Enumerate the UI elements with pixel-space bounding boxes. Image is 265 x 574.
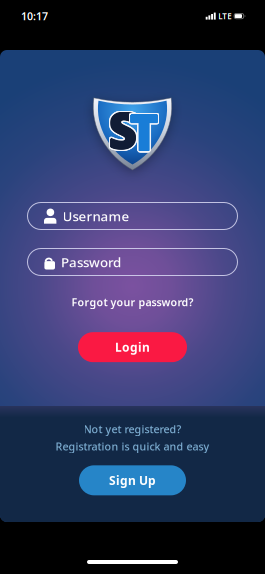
- staticText: S: [108, 96, 136, 161]
- staticText: T: [130, 97, 159, 162]
- button[interactable]: Sign Up: [79, 465, 186, 495]
- staticText: T: [130, 101, 159, 166]
- staticText: S: [107, 98, 135, 164]
- staticText: Username: [62, 207, 129, 225]
- staticText: T: [129, 99, 158, 164]
- staticText: S: [107, 95, 135, 161]
- staticText: S: [108, 97, 136, 162]
- staticText: T: [128, 99, 157, 165]
- staticText: S: [110, 97, 138, 162]
- staticText: Login: [115, 339, 150, 355]
- staticText: T: [131, 98, 160, 163]
- staticText: T: [128, 97, 157, 163]
- staticText: S: [107, 97, 135, 163]
- staticText: S: [109, 97, 137, 162]
- staticText: T: [131, 97, 160, 163]
- button[interactable]: Username: [27, 202, 238, 230]
- staticText: T: [129, 99, 158, 165]
- staticText: S: [108, 97, 136, 162]
- staticText: S: [109, 99, 137, 164]
- staticText: S: [107, 96, 135, 161]
- staticText: S: [110, 95, 138, 161]
- staticText: S: [110, 96, 138, 161]
- staticText: T: [129, 97, 158, 162]
- staticText: S: [110, 97, 138, 163]
- button[interactable]: Login: [78, 332, 187, 362]
- staticText: T: [129, 98, 158, 163]
- staticText: Password: [61, 253, 121, 271]
- staticText: T: [131, 100, 160, 166]
- button[interactable]: Forgot your password?: [71, 295, 193, 309]
- staticText: LTE: [218, 11, 231, 21]
- staticText: Forgot your password?: [71, 295, 193, 309]
- staticText: S: [110, 98, 138, 164]
- staticText: S: [108, 95, 136, 160]
- staticText: S: [109, 95, 137, 160]
- staticText: T: [129, 101, 158, 166]
- staticText: T: [129, 101, 158, 166]
- staticText: 10:17: [21, 9, 48, 23]
- staticText: S: [107, 97, 135, 162]
- staticText: S: [108, 99, 136, 164]
- staticText: S: [108, 95, 136, 160]
- staticText: T: [130, 99, 159, 164]
- button[interactable]: Password: [27, 248, 238, 276]
- staticText: T: [129, 99, 158, 164]
- staticText: T: [131, 99, 160, 165]
- staticText: Not yet registered?: [83, 422, 181, 436]
- staticText: T: [128, 100, 157, 166]
- staticText: T: [128, 99, 157, 164]
- staticText: T: [129, 97, 158, 162]
- staticText: T: [131, 99, 160, 164]
- staticText: Registration is quick and easy: [55, 439, 209, 453]
- staticText: Sign Up: [109, 472, 156, 488]
- staticText: S: [108, 99, 136, 164]
- staticText: T: [128, 98, 157, 163]
- staticText: S: [108, 97, 136, 163]
